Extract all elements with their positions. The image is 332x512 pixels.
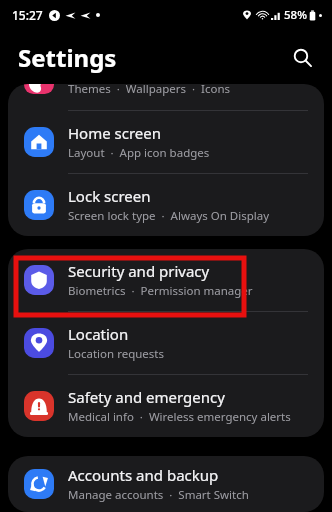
staticText: Manage accounts · Smart Switch — [68, 487, 249, 503]
staticText: Lock screen — [68, 186, 151, 206]
staticText: 58% — [284, 7, 307, 23]
staticText: Settings — [18, 41, 117, 74]
staticText: Home screen — [68, 123, 162, 143]
button[interactable]: Themes · Wallpapers · Icons — [8, 84, 324, 110]
staticText: Screen lock type · Always On Display — [68, 208, 270, 224]
staticText: Location requests — [68, 346, 164, 362]
staticText: Safety and emergency — [68, 387, 225, 407]
staticText: Security and privacy — [68, 261, 210, 281]
button[interactable]: Home screen — [8, 111, 324, 173]
button[interactable]: Safety and emergency — [8, 375, 324, 437]
staticText: Accounts and backup — [68, 465, 219, 485]
staticText: Layout · App icon badges — [68, 145, 210, 161]
button[interactable]: Security and privacy — [8, 249, 324, 311]
button[interactable]: Lock screen — [8, 174, 324, 236]
button[interactable]: Search — [284, 39, 320, 75]
staticText: 15:27 — [12, 7, 43, 23]
button[interactable]: Accounts and backup — [8, 456, 324, 512]
staticText: Medical info · Wireless emergency alerts — [68, 409, 291, 425]
staticText: Biometrics · Permission manager — [68, 283, 253, 299]
staticText: Themes · Wallpapers · Icons — [68, 84, 230, 97]
staticText: Location — [68, 324, 129, 344]
button[interactable]: Location — [8, 312, 324, 374]
